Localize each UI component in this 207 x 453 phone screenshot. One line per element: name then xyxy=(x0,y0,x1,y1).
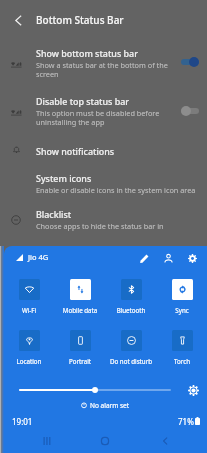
button[interactable]: Brightness xyxy=(12,383,175,397)
staticText: Bluetooth xyxy=(106,306,156,314)
button[interactable]: Auto brightness xyxy=(186,383,200,397)
staticText: Enable or disable icons in the system ic… xyxy=(36,185,196,195)
staticText: Do not disturb xyxy=(106,357,156,365)
staticText: Sync xyxy=(157,306,207,314)
button[interactable]: Sync xyxy=(157,279,207,314)
staticText: Disable top status bar xyxy=(36,95,130,107)
staticText: Torch xyxy=(157,357,207,365)
staticText: Blacklist xyxy=(36,208,72,220)
button[interactable]: Location xyxy=(4,330,54,365)
staticText: Bottom Status Bar xyxy=(36,13,124,27)
button[interactable]: Show bottom status bar xyxy=(0,41,207,83)
button[interactable]: Recents xyxy=(33,429,61,453)
staticText: 19:01 xyxy=(12,416,33,427)
button[interactable]: Show notifications xyxy=(0,139,207,163)
button[interactable]: Blacklist xyxy=(0,202,207,232)
button[interactable]: Do not disturb xyxy=(106,330,156,365)
button[interactable]: Settings xyxy=(184,250,200,266)
staticText: Show notifications xyxy=(36,145,115,157)
button[interactable]: System icons xyxy=(0,166,207,196)
button[interactable]: Home xyxy=(91,429,119,453)
button[interactable]: Portrait xyxy=(55,330,105,365)
staticText: No alarm set xyxy=(90,401,130,410)
button[interactable]: Back xyxy=(0,0,36,40)
button[interactable]: Back xyxy=(151,429,179,453)
staticText: System icons xyxy=(36,172,92,184)
button[interactable]: Bluetooth xyxy=(106,279,156,314)
button[interactable]: Disable top status bar xyxy=(0,89,207,131)
staticText: 71% xyxy=(178,416,194,427)
button[interactable]: Mobile data xyxy=(55,279,105,314)
button[interactable]: Torch xyxy=(157,330,207,365)
staticText: Wi-Fi xyxy=(4,306,54,314)
staticText: Jio 4G xyxy=(28,252,49,262)
staticText: Location xyxy=(4,357,54,365)
button[interactable]: No alarm set xyxy=(4,399,207,411)
staticText: Portrait xyxy=(55,357,105,365)
staticText: Show bottom status bar xyxy=(36,47,138,59)
staticText: Mobile data xyxy=(55,306,105,314)
button[interactable]: Account xyxy=(160,250,176,266)
staticText: Show a status bar at the bottom of the s… xyxy=(36,60,168,80)
button[interactable]: Edit xyxy=(136,250,152,266)
button[interactable]: Wi-Fi xyxy=(4,279,54,314)
staticText: This option must be disabled before unin… xyxy=(36,108,160,128)
staticText: Choose apps to hide the status bar in xyxy=(36,221,164,231)
